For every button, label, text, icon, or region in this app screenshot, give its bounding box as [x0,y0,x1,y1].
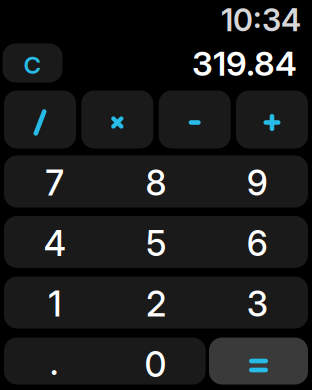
button[interactable]: Add [236,90,308,148]
button[interactable]: Divide [4,90,76,148]
staticText: 1 [48,283,61,325]
button[interactable]: 1 [4,276,105,328]
staticText: 7 [45,162,64,204]
button[interactable]: 9 [207,155,308,207]
button[interactable]: Clear [2,43,62,82]
button[interactable]: . [3,337,105,384]
button[interactable]: 4 [4,216,105,268]
staticText: 9 [247,162,268,204]
staticText: 8 [145,162,166,204]
button[interactable]: 3 [207,276,308,328]
staticText: . [50,341,59,383]
button[interactable]: Equals [209,337,308,384]
staticText: 6 [247,222,268,264]
button[interactable]: Subtract [159,90,231,148]
staticText: C [23,50,41,79]
staticText: 3 [247,283,268,325]
staticText: 4 [44,222,66,264]
staticText: 2 [146,283,166,325]
button[interactable]: 7 [4,155,105,207]
button[interactable]: 6 [207,216,308,268]
button[interactable]: 2 [105,276,207,328]
button[interactable]: 5 [105,216,207,268]
staticText: 10:34 [221,1,301,38]
staticText: 0 [144,343,166,385]
staticText: 5 [146,222,166,264]
button[interactable]: 8 [105,155,207,207]
button[interactable]: 0 [105,337,206,384]
staticText: 319.84 [192,43,297,84]
button[interactable]: Multiply [81,90,153,148]
